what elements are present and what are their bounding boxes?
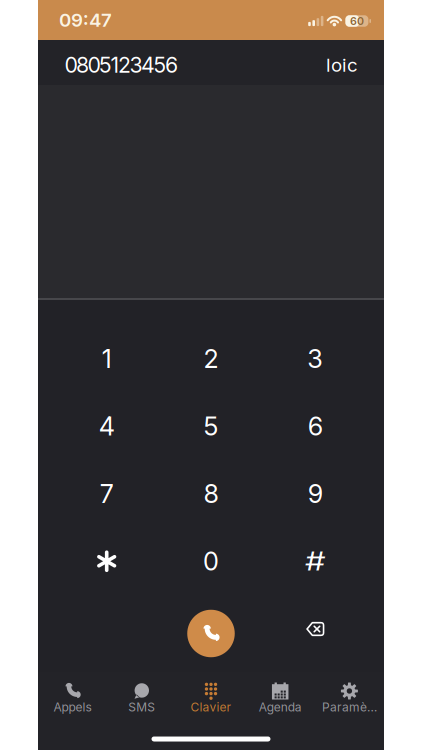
button[interactable]: SMS (107, 682, 176, 714)
staticText: 2 (203, 344, 218, 374)
button[interactable]: 7 (55, 460, 159, 527)
button[interactable]: 3 (263, 325, 367, 392)
staticText: Agenda (259, 700, 302, 714)
button[interactable]: Astérisque (55, 527, 159, 595)
staticText: 7 (100, 479, 114, 509)
button[interactable]: Paramè… (315, 682, 384, 714)
staticText: 4 (99, 411, 115, 441)
staticText: 8 (203, 479, 218, 509)
button[interactable]: 4 (55, 392, 159, 460)
button[interactable]: Appeler (159, 610, 263, 657)
button[interactable]: # (263, 527, 367, 595)
staticText: 0 (203, 546, 219, 576)
staticText: 5 (203, 411, 218, 441)
staticText: Paramè… (322, 700, 377, 714)
staticText: Appels (54, 700, 92, 714)
button[interactable]: Agenda (246, 682, 315, 714)
button[interactable]: Appels (38, 682, 107, 714)
staticText: 0805123456 (64, 52, 178, 78)
button[interactable]: 8 (159, 460, 263, 527)
button[interactable]: Effacer (263, 610, 367, 657)
button[interactable]: 1 (55, 325, 159, 392)
button[interactable]: Clavier (176, 682, 246, 714)
button[interactable]: 9 (263, 460, 367, 527)
staticText: 60 (350, 15, 364, 27)
button[interactable]: 5 (159, 392, 263, 460)
staticText: loic (326, 54, 358, 76)
staticText: # (307, 546, 323, 576)
staticText: SMS (128, 700, 155, 714)
staticText: Clavier (190, 700, 231, 714)
staticText: 09:47 (59, 9, 112, 31)
staticText: 3 (307, 344, 323, 374)
staticText: 9 (308, 479, 323, 509)
staticText: 1 (102, 344, 112, 374)
button[interactable]: 6 (263, 392, 367, 460)
staticText: 6 (308, 411, 323, 441)
button[interactable]: 0 (159, 527, 263, 595)
button[interactable]: loic (326, 51, 384, 73)
button[interactable]: 2 (159, 325, 263, 392)
